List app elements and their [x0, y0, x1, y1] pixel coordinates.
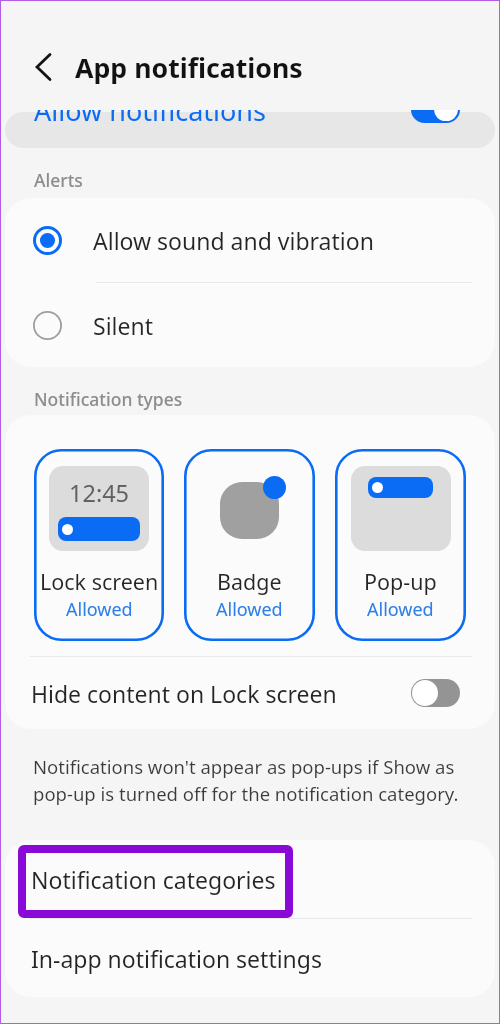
staticText: Notifications won't appear as pop-ups if…: [33, 754, 459, 807]
staticText: Hide content on Lock screen: [31, 678, 337, 709]
staticText: Lock screen: [40, 567, 159, 596]
staticText: Alerts: [34, 168, 83, 192]
button[interactable]: 12:45: [34, 449, 164, 641]
staticText: Notification types: [34, 387, 183, 411]
staticText: Badge: [217, 567, 282, 596]
button[interactable]: Back: [19, 45, 63, 89]
button[interactable]: Badge: [184, 449, 315, 641]
staticText: Allowed: [66, 597, 133, 622]
staticText: In-app notification settings: [31, 943, 322, 974]
staticText: Pop-up: [364, 567, 437, 596]
staticText: Allow sound and vibration: [93, 225, 374, 256]
button[interactable]: In-app notification settings: [5, 919, 495, 997]
staticText: Allowed: [367, 597, 434, 622]
staticText: Allow notifications: [34, 110, 266, 129]
button[interactable]: Hide content on Lock screen: [5, 657, 495, 729]
button[interactable]: Allow sound and vibration: [5, 198, 495, 282]
staticText: App notifications: [75, 49, 303, 85]
button[interactable]: [5, 112, 495, 148]
staticText: Notification categories: [31, 864, 276, 895]
staticText: 12:45: [69, 477, 130, 509]
button[interactable]: Notification categories: [5, 840, 495, 918]
staticText: Allowed: [216, 597, 283, 622]
button[interactable]: Pop-up: [335, 449, 466, 641]
staticText: Silent: [93, 310, 153, 341]
button[interactable]: Silent: [5, 283, 495, 367]
